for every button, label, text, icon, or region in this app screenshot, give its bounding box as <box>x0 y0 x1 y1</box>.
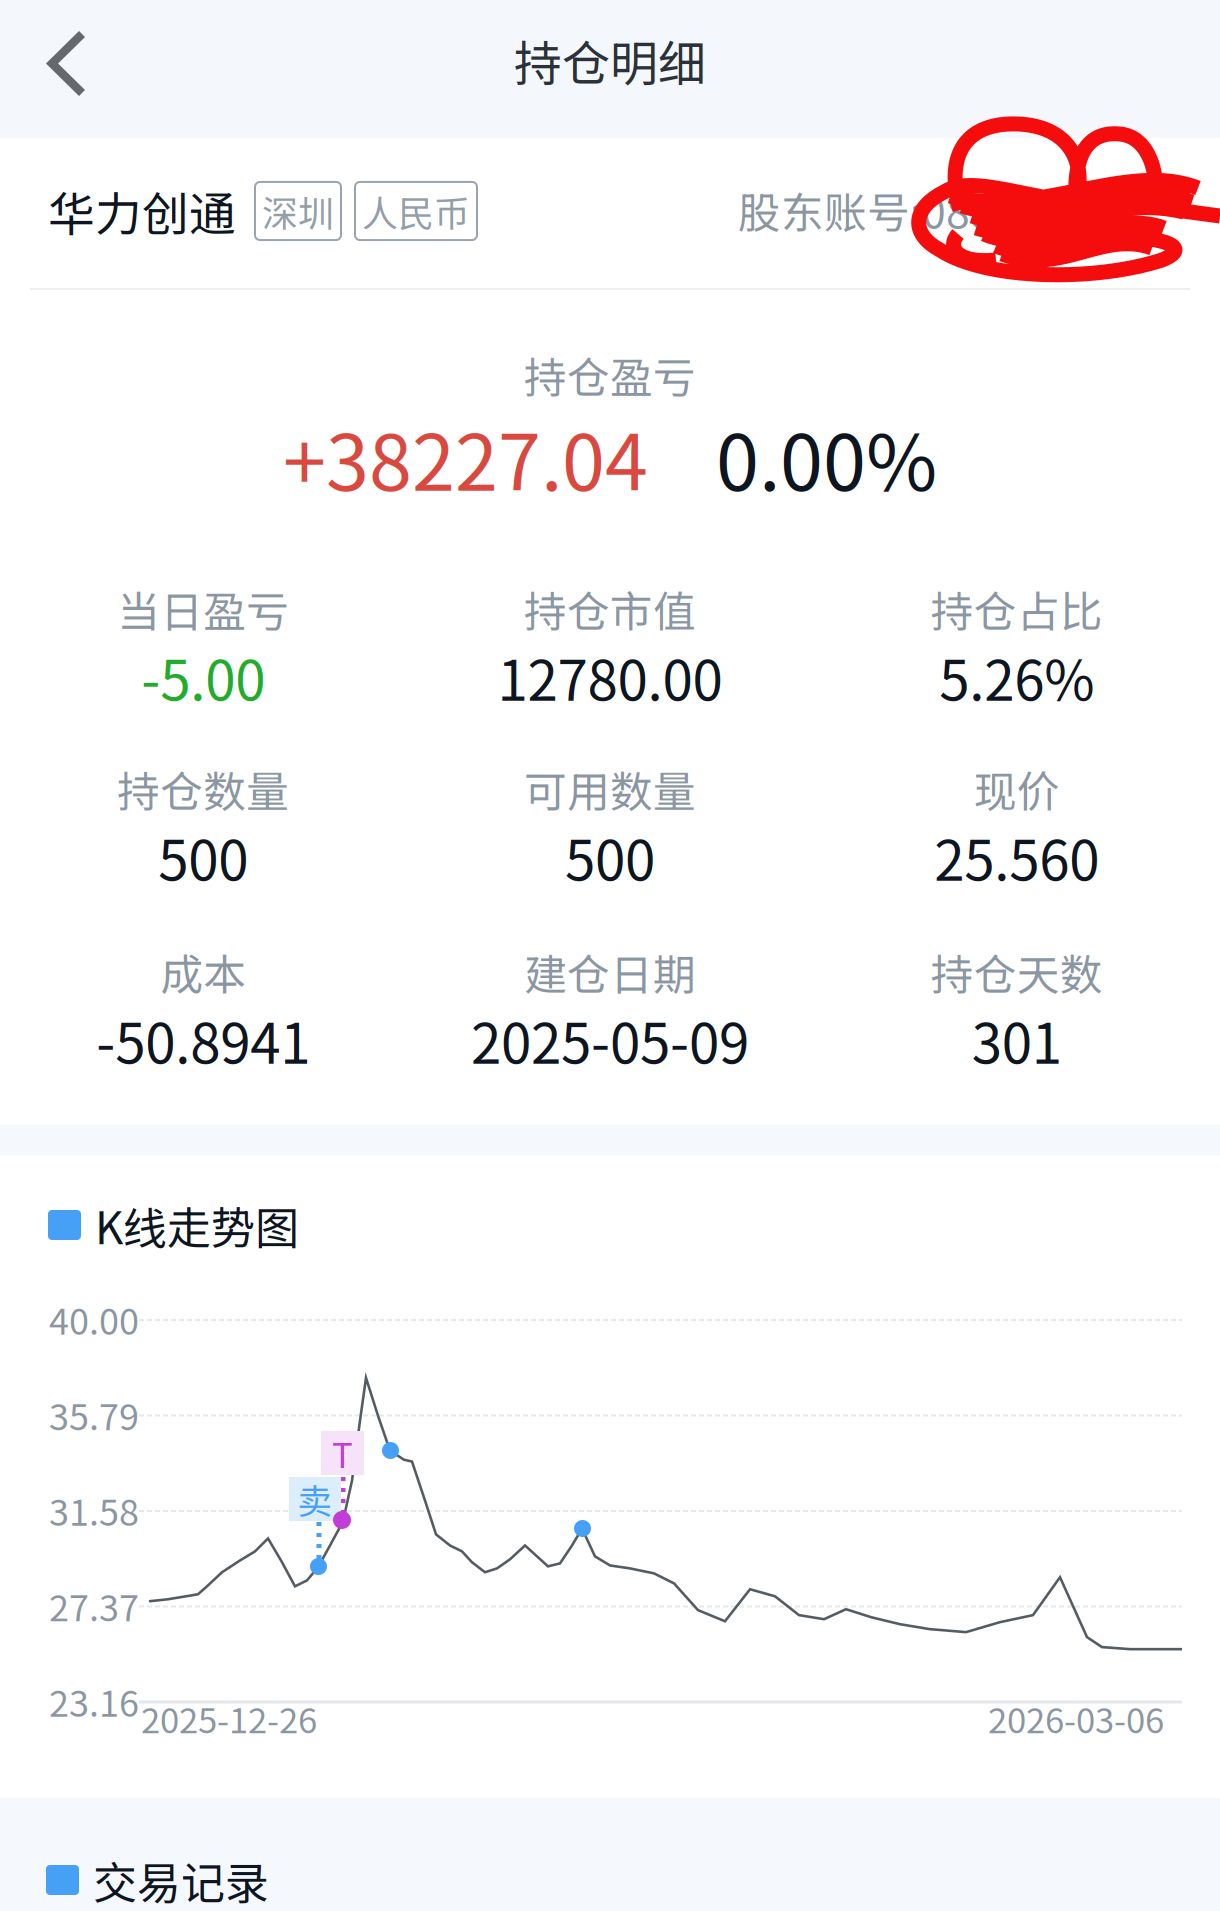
staticText: 0.00% <box>716 401 937 513</box>
staticText: 40.00 <box>49 1293 139 1345</box>
staticText: 华力创通 <box>48 177 236 245</box>
staticText: 500 <box>565 817 655 897</box>
staticText: 35.79 <box>49 1388 139 1441</box>
staticText: 股东账号: <box>738 179 922 241</box>
staticText: 12780.00 <box>497 637 722 717</box>
staticText: -50.8941 <box>96 1000 310 1080</box>
staticText: 可用数量 <box>524 758 696 820</box>
button[interactable]: K线走势图 <box>48 1203 1176 1247</box>
staticText: 卖 <box>297 1474 332 1524</box>
staticText: 现价 <box>974 758 1060 820</box>
staticText: 持仓市值 <box>524 578 696 640</box>
button[interactable]: 返回 <box>0 0 126 136</box>
staticText: 持仓天数 <box>931 941 1103 1003</box>
button[interactable]: 交易记录 <box>46 1858 1174 1902</box>
staticText: 深圳 <box>262 185 334 237</box>
staticText: 建仓日期 <box>524 941 696 1003</box>
staticText: +38227.04 <box>283 401 648 513</box>
staticText: 成本 <box>160 941 246 1003</box>
staticText: 人民币 <box>362 185 470 237</box>
staticText: 2026-03-06 <box>988 1693 1164 1743</box>
staticText: 08815 <box>922 179 1042 241</box>
staticText: -5.00 <box>141 637 265 717</box>
staticText: 301 <box>972 1000 1062 1080</box>
staticText: 5.26% <box>939 637 1094 717</box>
staticText: 持仓占比 <box>931 578 1103 640</box>
staticText: 27.37 <box>49 1579 139 1632</box>
staticText: 31.58 <box>49 1484 139 1536</box>
staticText: 当日盈亏 <box>117 578 289 640</box>
staticText: 23.16 <box>49 1675 139 1727</box>
staticText: 500 <box>158 817 248 897</box>
staticText: 持仓盈亏 <box>524 344 696 406</box>
staticText: 25.560 <box>934 817 1099 897</box>
button[interactable]: 华力创通 <box>48 181 488 241</box>
staticText: T <box>332 1428 353 1478</box>
staticText: 持仓数量 <box>117 758 289 820</box>
staticText: 交易记录 <box>93 1848 269 1911</box>
staticText: 2025-12-26 <box>141 1693 317 1743</box>
staticText: 持仓明细 <box>514 25 706 95</box>
staticText: 2025-05-09 <box>471 1000 749 1080</box>
staticText: K线走势图 <box>95 1193 299 1257</box>
